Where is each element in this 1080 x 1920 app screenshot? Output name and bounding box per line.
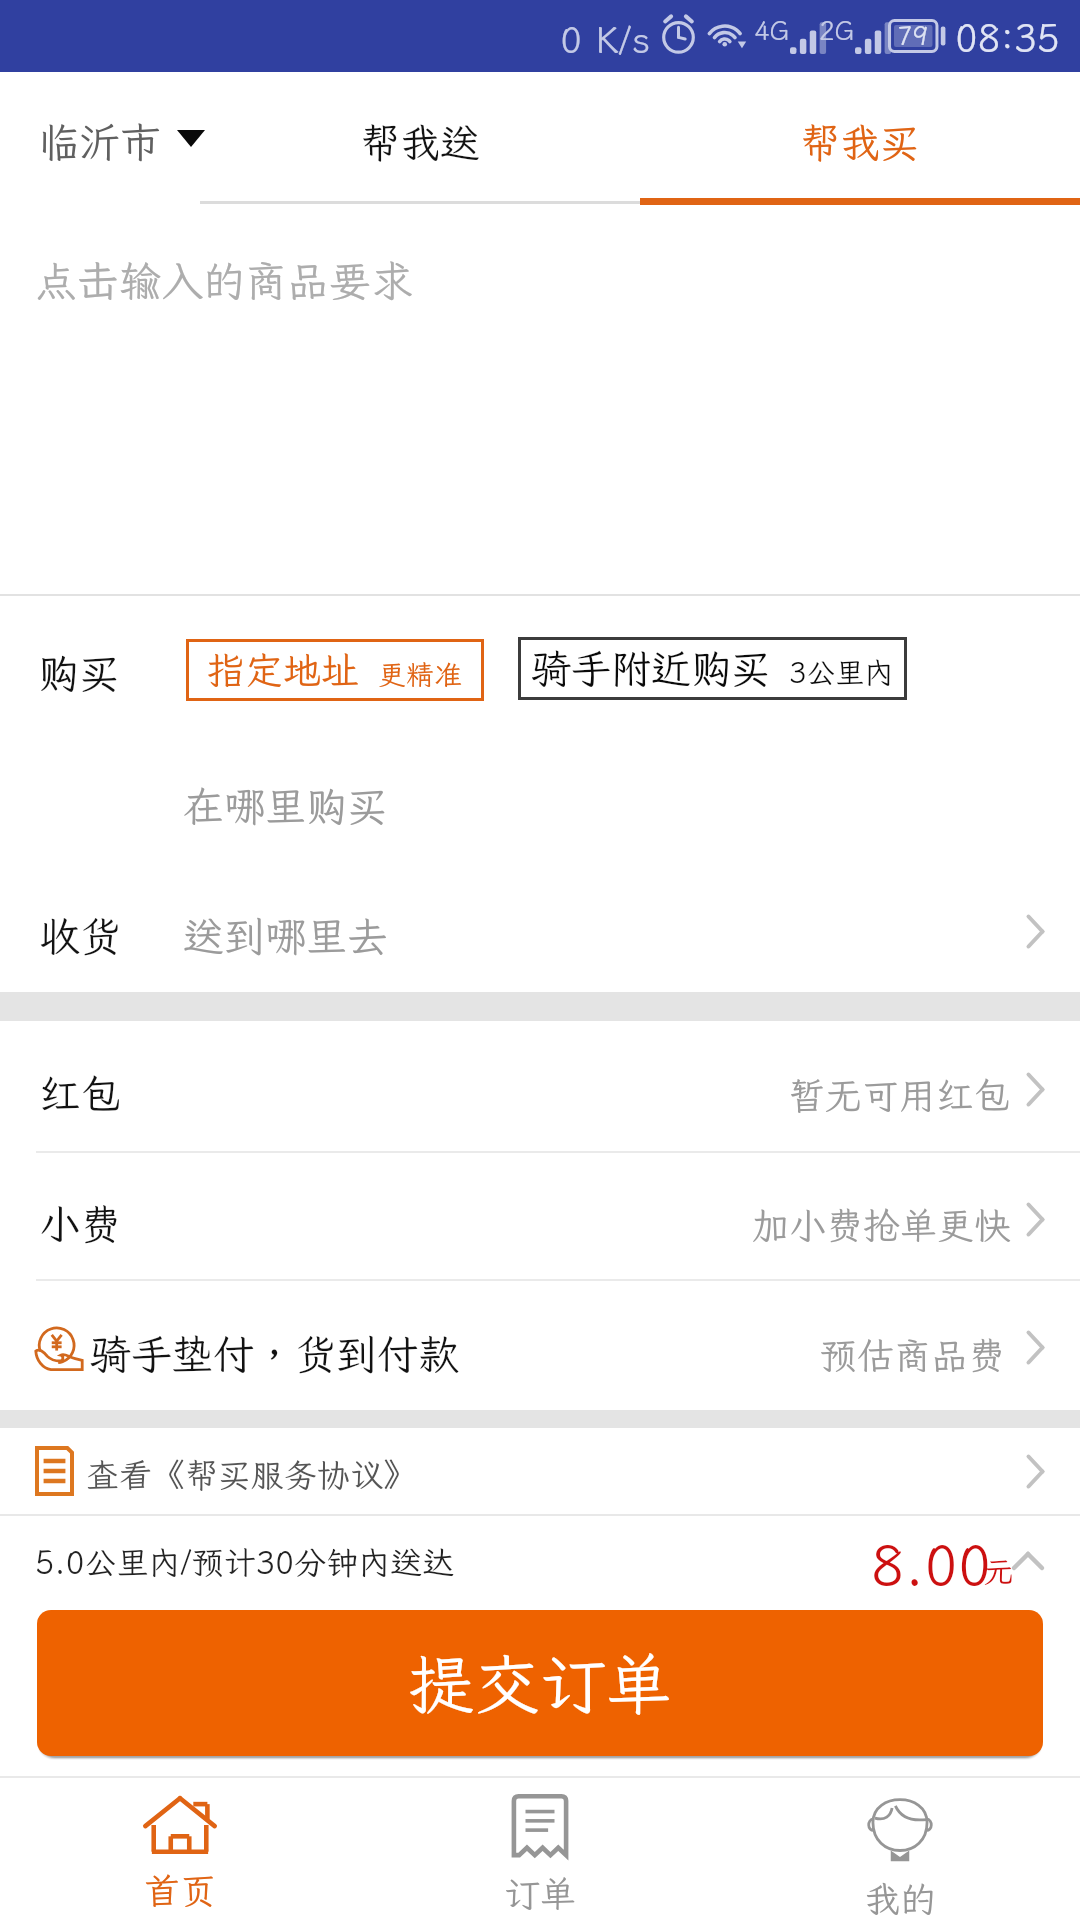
button[interactable]: 收货: [0, 870, 1080, 990]
staticText: 79: [897, 18, 929, 52]
staticText: 点击输入的商品要求: [35, 253, 414, 308]
staticText: 0 K/s: [560, 15, 651, 64]
button[interactable]: 帮我送: [200, 72, 640, 205]
staticText: 在哪里购买: [183, 779, 388, 833]
staticText: 8.00: [871, 1527, 992, 1601]
button[interactable]: 骑手附近购买: [518, 637, 907, 700]
staticText: 查看《帮买服务协议》: [86, 1453, 416, 1496]
staticText: 加小费抢单更快: [752, 1201, 1011, 1250]
staticText: 帮我送: [360, 116, 480, 169]
staticText: 骑手垫付，货到付款: [90, 1327, 459, 1381]
staticText: 临沂市: [38, 115, 161, 169]
staticText: 预估商品费: [820, 1331, 1005, 1380]
button[interactable]: 点击输入的商品要求: [0, 205, 1080, 595]
staticText: 红包: [39, 1067, 121, 1121]
button[interactable]: 骑手垫付，货到付款: [0, 1281, 1080, 1408]
staticText: 暂无可用红包: [788, 1071, 1010, 1120]
staticText: 2G: [819, 13, 855, 47]
button[interactable]: 我的: [720, 1778, 1080, 1920]
button[interactable]: 在哪里购买: [0, 752, 1080, 848]
staticText: 订单: [504, 1870, 577, 1917]
button[interactable]: 提交订单: [37, 1610, 1043, 1756]
staticText: 08:35: [955, 13, 1060, 63]
staticText: 购买: [38, 646, 120, 700]
button[interactable]: Expand fee details: [1005, 1536, 1051, 1586]
button[interactable]: 首页: [0, 1778, 360, 1920]
staticText: 提交订单: [408, 1640, 672, 1727]
button[interactable]: 帮我买: [640, 72, 1080, 205]
staticText: 骑手附近购买: [531, 642, 771, 695]
staticText: 收货: [39, 909, 121, 963]
other: Alarm: [660, 13, 697, 55]
staticText: 5.0公里内/预计30分钟内送达: [35, 1541, 455, 1583]
staticText: 首页: [144, 1867, 217, 1914]
staticText: 3公里内: [789, 653, 894, 691]
staticText: 小费: [39, 1197, 121, 1251]
other: Wifi: [705, 17, 747, 51]
staticText: 送到哪里去: [183, 909, 388, 963]
button[interactable]: 红包: [0, 1021, 1080, 1151]
staticText: 4G: [754, 13, 790, 47]
staticText: 指定地址: [207, 645, 360, 695]
staticText: 元: [984, 1551, 1014, 1591]
button[interactable]: 查看《帮买服务协议》: [0, 1428, 1080, 1514]
button[interactable]: 订单: [360, 1778, 720, 1920]
staticText: 帮我买: [800, 116, 920, 169]
button[interactable]: 指定地址: [186, 639, 484, 701]
other: Battery: [888, 19, 946, 53]
button[interactable]: 临沂市: [0, 72, 210, 205]
button[interactable]: 小费: [0, 1153, 1080, 1279]
staticText: 我的: [864, 1875, 937, 1920]
staticText: 更精准: [378, 656, 463, 693]
